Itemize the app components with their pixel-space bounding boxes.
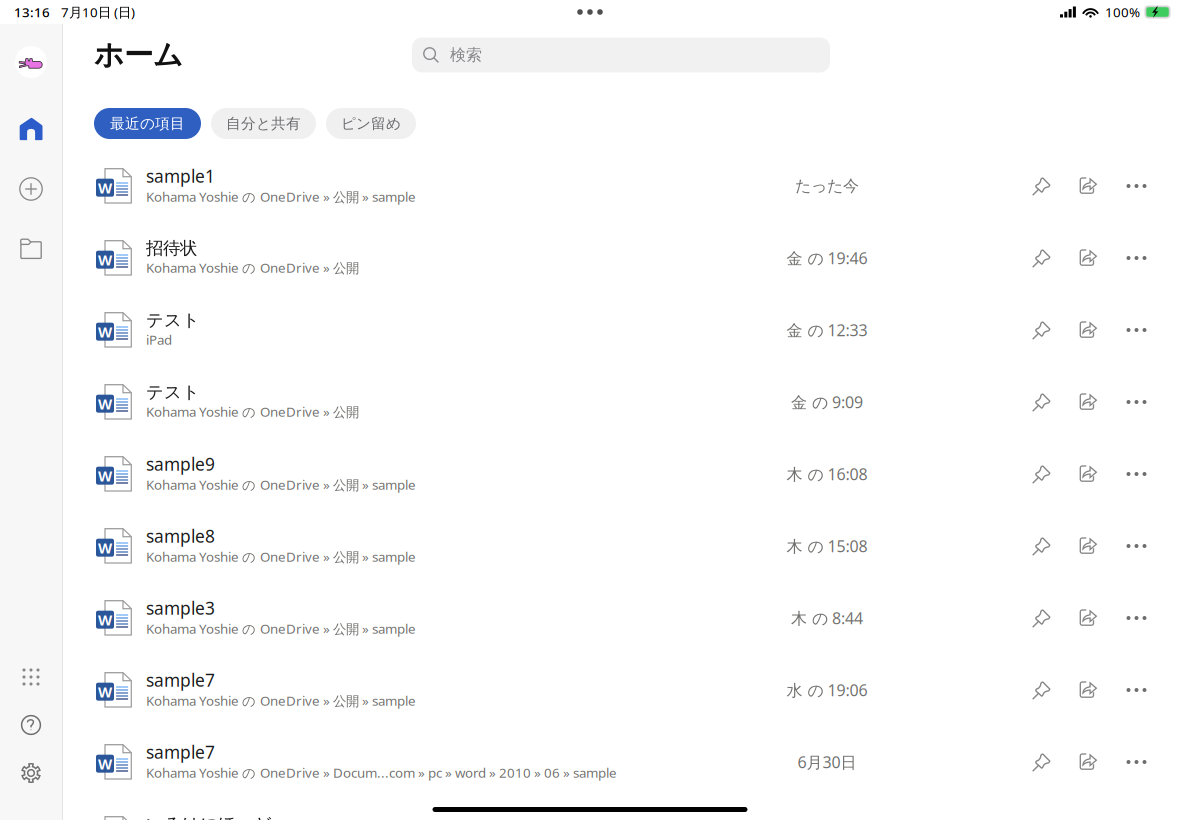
staticText: 木 の 16:08: [786, 463, 867, 485]
button[interactable]: Pin: [1018, 740, 1065, 784]
staticText: W: [98, 610, 112, 629]
staticText: Kohama Yoshie の OneDrive » Docum...com »…: [146, 764, 617, 781]
staticText: 7月10日 (日): [61, 3, 135, 21]
staticText: 13:16: [14, 3, 50, 21]
staticText: Kohama Yoshie の OneDrive » 公開 » sample: [146, 188, 416, 205]
staticText: Kohama Yoshie の OneDrive » 公開 » sample: [146, 548, 416, 565]
staticText: W: [98, 394, 112, 413]
staticText: W: [98, 250, 112, 269]
staticText: sample7: [146, 741, 215, 764]
staticText: 招待状: [146, 237, 197, 259]
staticText: W: [98, 466, 112, 485]
button[interactable]: New: [8, 166, 54, 212]
staticText: Kohama Yoshie の OneDrive » 公開: [146, 403, 359, 421]
staticText: ピン留め: [341, 114, 401, 132]
button[interactable]: W: [63, 150, 1180, 222]
staticText: sample7: [146, 669, 215, 692]
button[interactable]: Share: [1065, 380, 1112, 424]
button[interactable]: Pin: [1018, 380, 1065, 424]
staticText: sample3: [146, 597, 215, 620]
staticText: 6月30日: [797, 751, 856, 773]
staticText: 検索: [450, 45, 482, 65]
button[interactable]: Home: [8, 106, 54, 152]
button[interactable]: Help: [8, 702, 54, 748]
staticText: Kohama Yoshie の OneDrive » 公開 » sample: [146, 476, 416, 493]
button[interactable]: Share: [1065, 308, 1112, 352]
button[interactable]: W: [63, 438, 1180, 510]
button[interactable]: Pin: [1018, 596, 1065, 640]
button[interactable]: Settings: [8, 750, 54, 796]
staticText: 自分と共有: [226, 114, 301, 132]
staticText: W: [98, 538, 112, 557]
staticText: たった今: [795, 176, 859, 196]
button[interactable]: W: [63, 510, 1180, 582]
staticText: テスト: [146, 381, 200, 403]
button[interactable]: ピン留め: [326, 108, 416, 139]
button[interactable]: More: [1112, 452, 1159, 496]
staticText: 金 の 12:33: [786, 319, 867, 341]
button[interactable]: W: [63, 798, 1180, 820]
button[interactable]: Share: [1065, 452, 1112, 496]
staticText: W: [98, 322, 112, 341]
button[interactable]: Share: [1065, 740, 1112, 784]
staticText: W: [98, 178, 112, 197]
button[interactable]: Files: [8, 226, 54, 272]
staticText: sample8: [146, 525, 215, 548]
button[interactable]: Pin: [1018, 524, 1065, 568]
button[interactable]: More: [1112, 740, 1159, 784]
staticText: Kohama Yoshie の OneDrive » 公開 » sample: [146, 620, 416, 637]
button[interactable]: W: [63, 366, 1180, 438]
button[interactable]: W: [63, 726, 1180, 798]
button[interactable]: Pin: [1018, 236, 1065, 280]
button[interactable]: Pin: [1018, 164, 1065, 208]
staticText: W: [98, 754, 112, 773]
staticText: W: [98, 682, 112, 701]
button[interactable]: Pin: [1018, 668, 1065, 712]
button[interactable]: Account: [9, 40, 53, 84]
button[interactable]: W: [63, 582, 1180, 654]
staticText: 100%: [1105, 3, 1140, 21]
staticText: いろはにほへど: [146, 813, 272, 820]
button[interactable]: More: [1112, 308, 1159, 352]
button[interactable]: W: [63, 222, 1180, 294]
staticText: Kohama Yoshie の OneDrive » 公開: [146, 259, 359, 277]
button[interactable]: More: [1112, 668, 1159, 712]
button[interactable]: 自分と共有: [211, 108, 316, 139]
staticText: テスト: [146, 309, 200, 331]
staticText: 木 の 8:44: [791, 607, 863, 629]
button[interactable]: Pin: [1018, 308, 1065, 352]
staticText: sample1: [146, 165, 215, 188]
button[interactable]: Apps: [8, 654, 54, 700]
button[interactable]: W: [63, 294, 1180, 366]
staticText: sample9: [146, 453, 215, 476]
button[interactable]: Share: [1065, 236, 1112, 280]
button[interactable]: 最近の項目: [94, 108, 201, 139]
button[interactable]: Share: [1065, 596, 1112, 640]
staticText: 木 の 15:08: [786, 535, 867, 557]
button[interactable]: Share: [1065, 668, 1112, 712]
button[interactable]: More: [1112, 164, 1159, 208]
button[interactable]: More: [1112, 524, 1159, 568]
staticText: iPad: [146, 331, 172, 348]
staticText: ホーム: [94, 37, 183, 73]
button[interactable]: Share: [1065, 524, 1112, 568]
button[interactable]: Pin: [1018, 452, 1065, 496]
staticText: 水 の 19:06: [786, 679, 867, 701]
button[interactable]: More: [1112, 380, 1159, 424]
button[interactable]: More: [1112, 236, 1159, 280]
staticText: Kohama Yoshie の OneDrive » 公開 » sample: [146, 692, 416, 709]
button[interactable]: W: [63, 654, 1180, 726]
staticText: 最近の項目: [110, 114, 185, 132]
button[interactable]: Share: [1065, 164, 1112, 208]
staticText: 金 の 9:09: [791, 391, 863, 413]
button[interactable]: More: [1112, 596, 1159, 640]
staticText: 金 の 19:46: [786, 247, 867, 269]
button[interactable]: 検索: [412, 37, 830, 72]
